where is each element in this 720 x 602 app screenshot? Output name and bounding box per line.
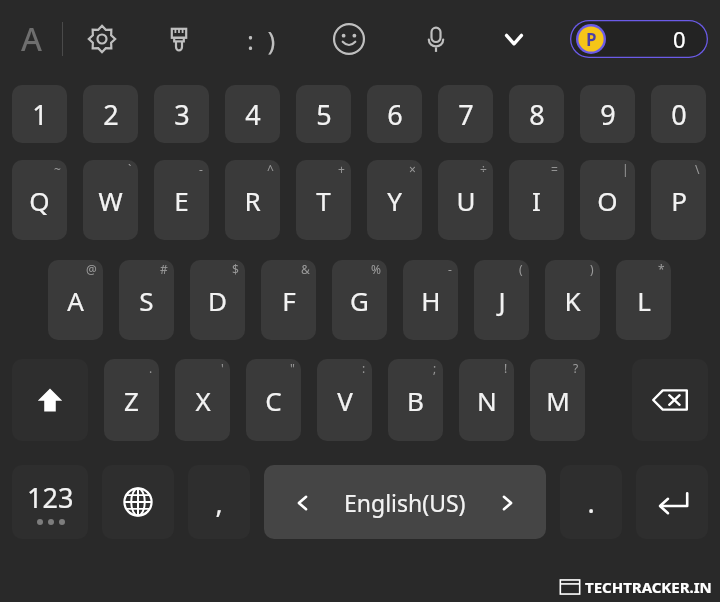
staticText: K <box>564 283 581 318</box>
staticText: P <box>671 183 687 218</box>
button[interactable]: 9 <box>580 85 635 143</box>
staticText: Y <box>387 183 402 218</box>
staticText: H <box>421 283 441 318</box>
staticText: A <box>21 17 42 61</box>
button[interactable]: Backspace <box>632 359 708 441</box>
staticText: U <box>456 183 476 218</box>
button[interactable]: 5 <box>296 85 351 143</box>
staticText: ^ <box>267 161 274 177</box>
staticText: 6 <box>387 96 403 133</box>
button[interactable]: P <box>651 160 706 240</box>
button[interactable]: D <box>190 260 245 340</box>
button[interactable]: J <box>474 260 529 340</box>
button[interactable]: Voice input <box>393 0 479 78</box>
staticText: 4 <box>245 96 261 133</box>
staticText: Z <box>124 383 139 418</box>
button[interactable]: Collapse toolbar <box>479 0 549 78</box>
staticText: | <box>622 161 629 177</box>
staticText: English(US) <box>344 487 466 518</box>
button[interactable]: H <box>403 260 458 340</box>
button[interactable]: M <box>530 359 585 441</box>
staticText: D <box>208 283 227 318</box>
staticText: Q <box>29 183 50 218</box>
button[interactable]: E <box>154 160 209 240</box>
staticText: 123 <box>27 479 74 516</box>
staticText: F <box>282 283 296 318</box>
staticText: A <box>67 283 84 318</box>
staticText: 8 <box>529 96 545 133</box>
button[interactable]: N <box>459 359 514 441</box>
button[interactable]: F <box>261 260 316 340</box>
staticText: $ <box>232 261 239 277</box>
button[interactable]: W <box>83 160 138 240</box>
button[interactable]: , <box>188 465 250 539</box>
button[interactable]: V <box>317 359 372 441</box>
button[interactable]: C <box>246 359 301 441</box>
staticText: R <box>244 183 261 218</box>
button[interactable]: X <box>175 359 230 441</box>
button[interactable]: Y <box>367 160 422 240</box>
button[interactable]: G <box>332 260 387 340</box>
button[interactable]: K <box>545 260 600 340</box>
button[interactable]: Q <box>12 160 67 240</box>
button[interactable]: 123 <box>12 465 88 539</box>
staticText: J <box>498 283 506 318</box>
staticText: , <box>215 484 223 521</box>
staticText: : <box>362 360 366 376</box>
button[interactable]: Settings <box>63 0 141 78</box>
staticText: W <box>98 183 123 218</box>
staticText: M <box>546 383 570 418</box>
staticText: ! <box>504 360 508 376</box>
button[interactable]: U <box>438 160 493 240</box>
button[interactable]: . <box>560 465 622 539</box>
button[interactable]: B <box>388 359 443 441</box>
button[interactable]: Change language <box>102 465 174 539</box>
staticText: + <box>338 161 345 177</box>
staticText: T <box>316 183 331 218</box>
staticText: V <box>337 383 353 418</box>
button[interactable]: S <box>119 260 174 340</box>
button[interactable]: I <box>509 160 564 240</box>
button[interactable]: 1 <box>12 85 67 143</box>
button[interactable]: Text style <box>0 0 62 78</box>
button[interactable]: 0 <box>651 85 706 143</box>
staticText: ~ <box>54 161 61 177</box>
button[interactable]: O <box>580 160 635 240</box>
staticText: ; <box>433 360 437 376</box>
button[interactable]: Theme <box>141 0 217 78</box>
button[interactable]: L <box>616 260 671 340</box>
staticText: ' <box>221 360 224 376</box>
staticText: ) <box>590 261 594 277</box>
button[interactable]: 7 <box>438 85 493 143</box>
button[interactable]: Emoji <box>305 0 393 78</box>
staticText: : ) <box>247 22 276 57</box>
staticText: ? <box>573 360 579 376</box>
staticText: 1 <box>32 96 48 133</box>
button[interactable]: Shift <box>12 359 88 441</box>
staticText: G <box>350 283 369 318</box>
button[interactable]: Enter <box>636 465 708 539</box>
staticText: = <box>551 161 558 177</box>
staticText: - <box>199 161 203 177</box>
staticText: × <box>409 161 416 177</box>
button[interactable]: T <box>296 160 351 240</box>
staticText: L <box>637 283 651 318</box>
button[interactable]: Space, English(US) <box>264 465 546 539</box>
staticText: * <box>658 261 665 277</box>
button[interactable]: 6 <box>367 85 422 143</box>
staticText: O <box>597 183 618 218</box>
button[interactable]: 2 <box>83 85 138 143</box>
button[interactable]: Points <box>570 20 708 58</box>
button[interactable]: 4 <box>225 85 280 143</box>
staticText: ÷ <box>480 161 487 177</box>
staticText: P <box>586 28 597 51</box>
staticText: TECHTRACKER.IN <box>585 577 712 597</box>
button[interactable]: 8 <box>509 85 564 143</box>
button[interactable]: R <box>225 160 280 240</box>
button[interactable]: Z <box>104 359 159 441</box>
staticText: ` <box>128 161 132 177</box>
staticText: 3 <box>174 96 190 133</box>
button[interactable]: A <box>48 260 103 340</box>
button[interactable]: Text emoticons <box>217 0 305 78</box>
button[interactable]: 3 <box>154 85 209 143</box>
